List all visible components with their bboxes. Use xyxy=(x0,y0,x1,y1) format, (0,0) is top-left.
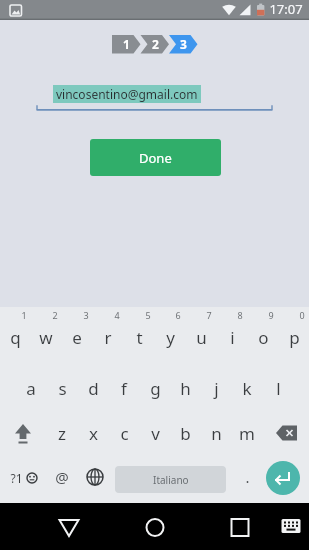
button[interactable]: y xyxy=(155,315,185,359)
button[interactable]: h xyxy=(170,366,200,410)
staticText: b xyxy=(180,422,191,445)
button[interactable]: ?1 xyxy=(1,463,31,493)
button[interactable] xyxy=(270,411,304,455)
staticText: w xyxy=(39,326,53,349)
button[interactable]: . xyxy=(230,466,264,488)
staticText: 2 xyxy=(52,309,58,321)
button[interactable]: v xyxy=(140,411,170,455)
button[interactable]: u xyxy=(186,315,216,359)
staticText: Done xyxy=(139,149,172,167)
button[interactable]: d xyxy=(78,366,108,410)
staticText: h xyxy=(180,377,191,400)
staticText: c xyxy=(120,422,129,445)
staticText: 1 xyxy=(21,309,27,321)
button[interactable]: j xyxy=(201,366,231,410)
button[interactable] xyxy=(55,513,83,541)
staticText: g xyxy=(150,377,161,400)
button[interactable]: l xyxy=(263,366,293,410)
button[interactable]: i xyxy=(217,315,247,359)
staticText: v xyxy=(151,422,160,445)
staticText: d xyxy=(88,377,99,400)
button[interactable]: t xyxy=(124,315,154,359)
staticText: z xyxy=(58,422,66,445)
button[interactable]: z xyxy=(47,411,77,455)
staticText: j xyxy=(214,377,219,400)
button[interactable]: @ xyxy=(45,466,79,488)
button[interactable]: Done xyxy=(90,139,221,176)
button[interactable]: e xyxy=(62,315,92,359)
button[interactable]: Italiano xyxy=(115,466,226,493)
staticText: Italiano xyxy=(153,473,189,487)
staticText: i xyxy=(230,326,235,349)
staticText: 4 xyxy=(114,309,120,321)
button[interactable]: m xyxy=(232,411,262,455)
staticText: 9 xyxy=(268,309,274,321)
button[interactable]: a xyxy=(16,366,46,410)
staticText: a xyxy=(26,377,36,400)
staticText: f xyxy=(121,377,127,400)
staticText: 1 xyxy=(123,36,130,52)
staticText: y xyxy=(166,326,175,349)
staticText: m xyxy=(239,422,255,445)
button[interactable]: x xyxy=(78,411,108,455)
staticText: e xyxy=(72,326,82,349)
staticText: 0 xyxy=(299,309,305,321)
staticText: 3 xyxy=(83,309,89,321)
button[interactable]: r xyxy=(93,315,123,359)
staticText: r xyxy=(104,326,112,349)
staticText: x xyxy=(89,422,98,445)
button[interactable]: p xyxy=(279,315,309,359)
button[interactable] xyxy=(6,411,40,455)
staticText: vincosentino@gmail.com xyxy=(56,86,198,102)
button[interactable]: o xyxy=(248,315,278,359)
button[interactable]: g xyxy=(140,366,170,410)
staticText: . xyxy=(245,467,250,487)
button[interactable]: s xyxy=(47,366,77,410)
button[interactable] xyxy=(141,513,169,541)
staticText: u xyxy=(196,326,207,349)
button[interactable] xyxy=(226,513,254,541)
button[interactable] xyxy=(280,515,304,539)
button[interactable]: vincosentino@gmail.com xyxy=(53,85,201,103)
staticText: o xyxy=(258,326,269,349)
button[interactable]: q xyxy=(0,315,30,359)
staticText: ?1 xyxy=(10,470,23,486)
staticText: 3 xyxy=(180,36,187,52)
staticText: l xyxy=(276,377,281,400)
staticText: q xyxy=(10,326,21,349)
staticText: p xyxy=(289,326,300,349)
staticText: 8 xyxy=(237,309,243,321)
staticText: @ xyxy=(55,467,69,487)
button[interactable]: c xyxy=(109,411,139,455)
staticText: t xyxy=(136,326,143,349)
button[interactable] xyxy=(266,461,300,495)
button[interactable]: b xyxy=(170,411,200,455)
button[interactable]: n xyxy=(201,411,231,455)
staticText: s xyxy=(58,377,67,400)
button[interactable]: k xyxy=(232,366,262,410)
button[interactable]: w xyxy=(31,315,61,359)
staticText: n xyxy=(211,422,222,445)
staticText: k xyxy=(242,377,252,400)
staticText: 7 xyxy=(206,309,212,321)
staticText: 5 xyxy=(145,309,151,321)
button[interactable]: f xyxy=(109,366,139,410)
staticText: 17:07 xyxy=(269,0,303,18)
button[interactable] xyxy=(84,466,106,488)
staticText: 6 xyxy=(175,309,181,321)
staticText: 2 xyxy=(152,36,159,52)
